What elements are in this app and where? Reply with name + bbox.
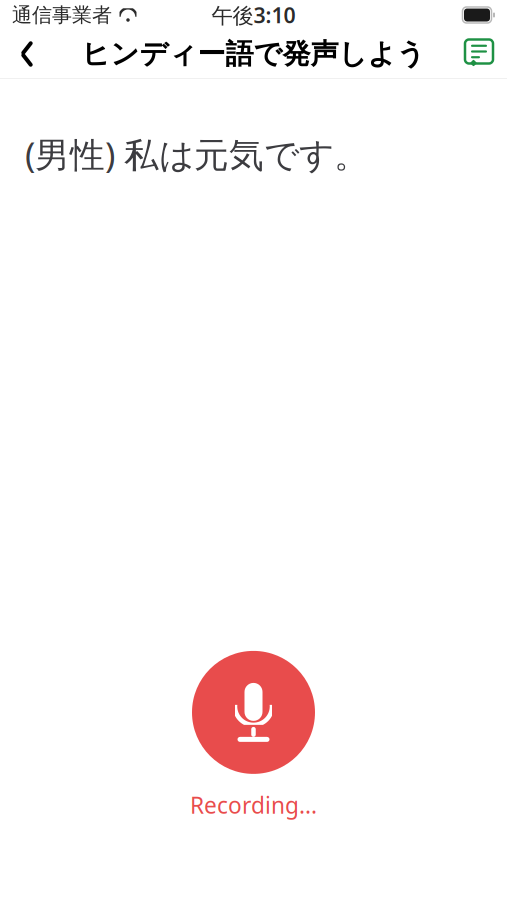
- staticText: 通信事業者: [12, 3, 112, 27]
- staticText: ヒンディー語で発声しよう: [81, 37, 425, 71]
- button[interactable]: Messages: [455, 30, 503, 78]
- staticText: 午後3:10: [211, 1, 295, 29]
- staticText: Recording...: [190, 790, 317, 820]
- staticText: (男性) 私は元気です。: [25, 131, 369, 177]
- button[interactable]: Stop recording: [192, 651, 315, 774]
- button[interactable]: Back: [4, 30, 50, 78]
